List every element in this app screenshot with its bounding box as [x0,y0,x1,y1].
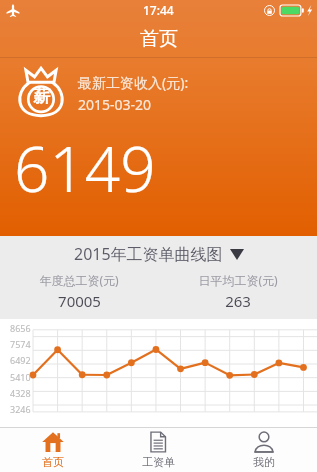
staticText: 17:44 [143,2,174,18]
button[interactable]: 2015年工资单曲线图 [0,241,317,267]
staticText: 6492 [10,354,31,366]
staticText: 日平均工资(元) [198,272,278,288]
button[interactable]: 我的 [211,428,317,472]
staticText: 2015-03-20 [78,95,152,114]
staticText: 薪 [33,86,50,107]
staticText: 6149 [14,126,156,210]
staticText: 7574 [10,338,31,350]
staticText: 4328 [10,387,31,399]
staticText: 首页 [140,27,178,51]
staticText: 263 [225,291,251,311]
staticText: 5410 [10,371,31,383]
staticText: 我的 [253,455,275,469]
staticText: 年度总工资(元) [39,272,119,288]
staticText: 8656 [10,322,31,334]
staticText: 最新工资收入(元): [78,73,189,92]
staticText: 工资单 [142,455,175,469]
staticText: 3246 [10,403,31,415]
button[interactable]: 工资单 [105,428,211,472]
staticText: 首页 [42,455,64,469]
staticText: 70005 [58,291,101,311]
staticText: 2015年工资单曲线图 [74,243,223,265]
button[interactable]: 首页 [0,428,105,472]
